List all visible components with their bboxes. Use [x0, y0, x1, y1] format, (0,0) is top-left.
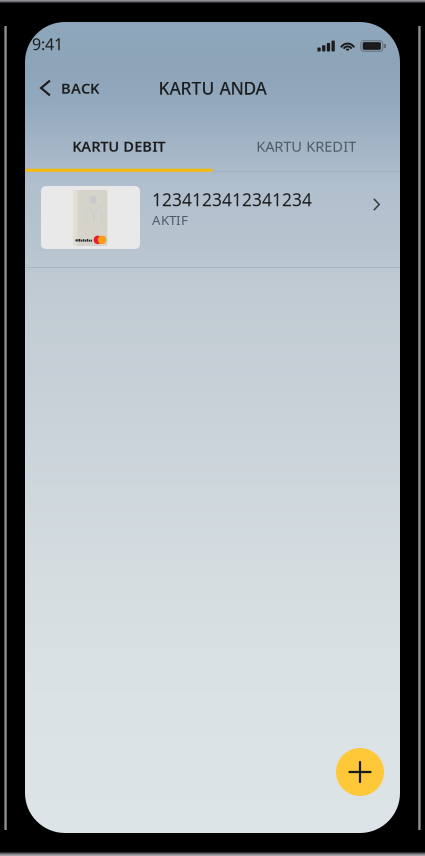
staticText: KARTU DEBIT [72, 136, 165, 156]
staticText: 9:41 [32, 33, 63, 55]
staticText: BACK [61, 78, 99, 98]
button[interactable]: Add card [336, 748, 384, 796]
button[interactable]: 1234123412341234 [25, 169, 400, 267]
button[interactable]: KARTU KREDIT [212, 107, 400, 172]
staticText: KARTU KREDIT [256, 136, 356, 156]
button[interactable]: KARTU DEBIT [25, 107, 212, 172]
button[interactable]: BACK [25, 66, 111, 110]
staticText: AKTIF [152, 211, 188, 229]
staticText: 1234123412341234 [152, 188, 312, 211]
staticText: KARTU ANDA [158, 76, 266, 99]
